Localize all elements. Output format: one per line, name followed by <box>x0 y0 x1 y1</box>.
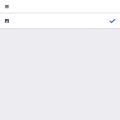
other: Selected <box>109 17 117 25</box>
other: Store <box>3 17 11 25</box>
button[interactable]: Menu <box>3 2 11 10</box>
button[interactable]: Store <box>0 14 120 28</box>
